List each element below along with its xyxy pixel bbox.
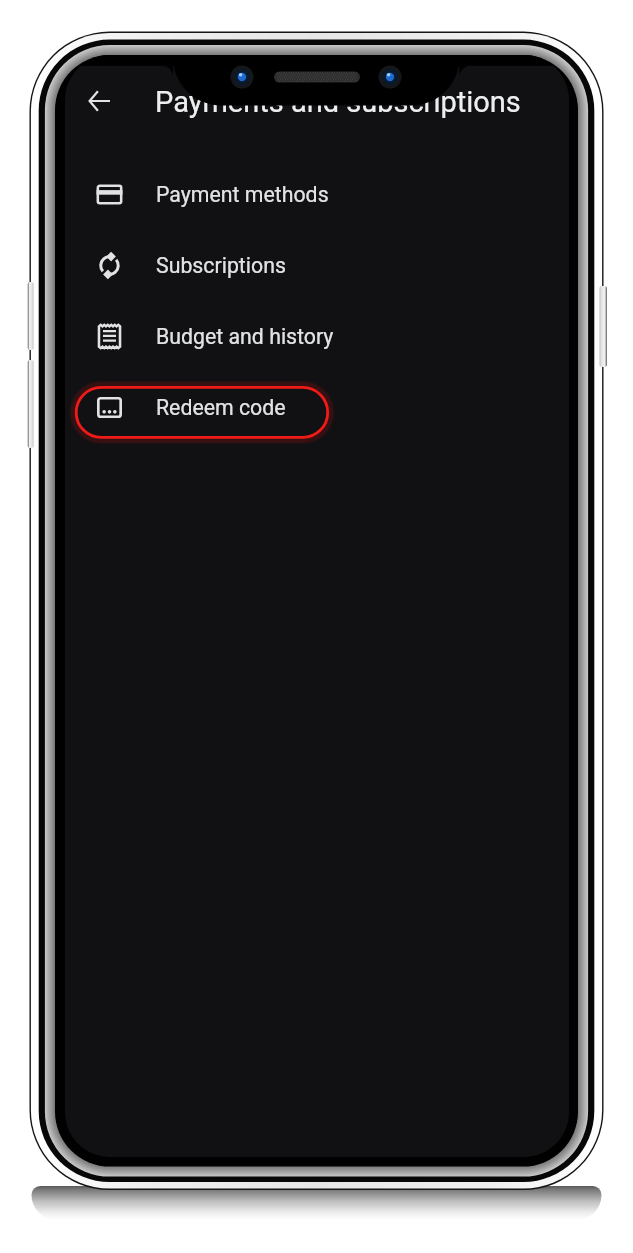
button[interactable]: Payment methods <box>65 158 569 229</box>
button[interactable]: Back <box>74 76 124 126</box>
button[interactable]: Subscriptions <box>65 229 569 300</box>
staticText: Redeem code <box>156 395 286 420</box>
staticText: Subscriptions <box>156 253 286 278</box>
staticText: Budget and history <box>156 324 334 349</box>
button[interactable]: Budget and history <box>65 300 569 371</box>
button[interactable]: Redeem code <box>65 371 569 442</box>
staticText: Payments and subscriptions <box>155 85 521 119</box>
staticText: Payment methods <box>156 182 329 207</box>
